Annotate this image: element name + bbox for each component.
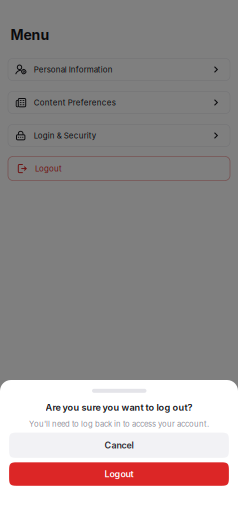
staticText: Personal Information <box>34 65 113 74</box>
staticText: Logout <box>35 164 62 173</box>
staticText: Are you sure you want to log out? <box>45 402 192 413</box>
staticText: Menu <box>10 26 49 43</box>
button[interactable]: Content Preferences <box>8 91 230 113</box>
button[interactable]: Login & Security <box>8 124 230 146</box>
button[interactable]: Personal Information <box>8 58 230 80</box>
staticText: You'll need to log back in to access you… <box>29 419 209 428</box>
staticText: Logout <box>104 469 133 479</box>
button[interactable]: Cancel <box>9 433 229 458</box>
staticText: Login & Security <box>34 131 96 140</box>
staticText: Cancel <box>104 440 133 451</box>
staticText: Content Preferences <box>34 98 116 107</box>
button[interactable]: Logout <box>9 462 229 486</box>
button[interactable]: Logout <box>8 156 230 180</box>
